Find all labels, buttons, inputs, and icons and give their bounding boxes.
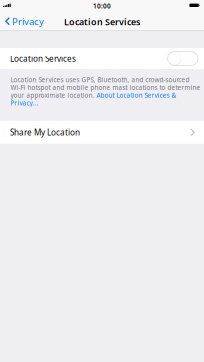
staticText: About Location Services &	[96, 91, 176, 99]
staticText: Privacy	[12, 15, 44, 28]
button[interactable]: Share My Location	[0, 121, 204, 144]
staticText: Share My Location	[10, 127, 80, 138]
button[interactable]: Location Services	[0, 48, 204, 69]
staticText: Location Services	[10, 53, 76, 64]
staticText: 10:00	[93, 1, 111, 10]
staticText: Wi-Fi hotspot and mobile phone mast loca…	[10, 83, 200, 92]
staticText: Privacy...	[10, 99, 38, 107]
staticText: your approximate location.	[10, 91, 96, 99]
button[interactable]: Privacy	[0, 13, 47, 31]
staticText: Location Services uses GPS, Bluetooth, a…	[10, 76, 189, 84]
staticText: Location Services	[64, 16, 140, 28]
